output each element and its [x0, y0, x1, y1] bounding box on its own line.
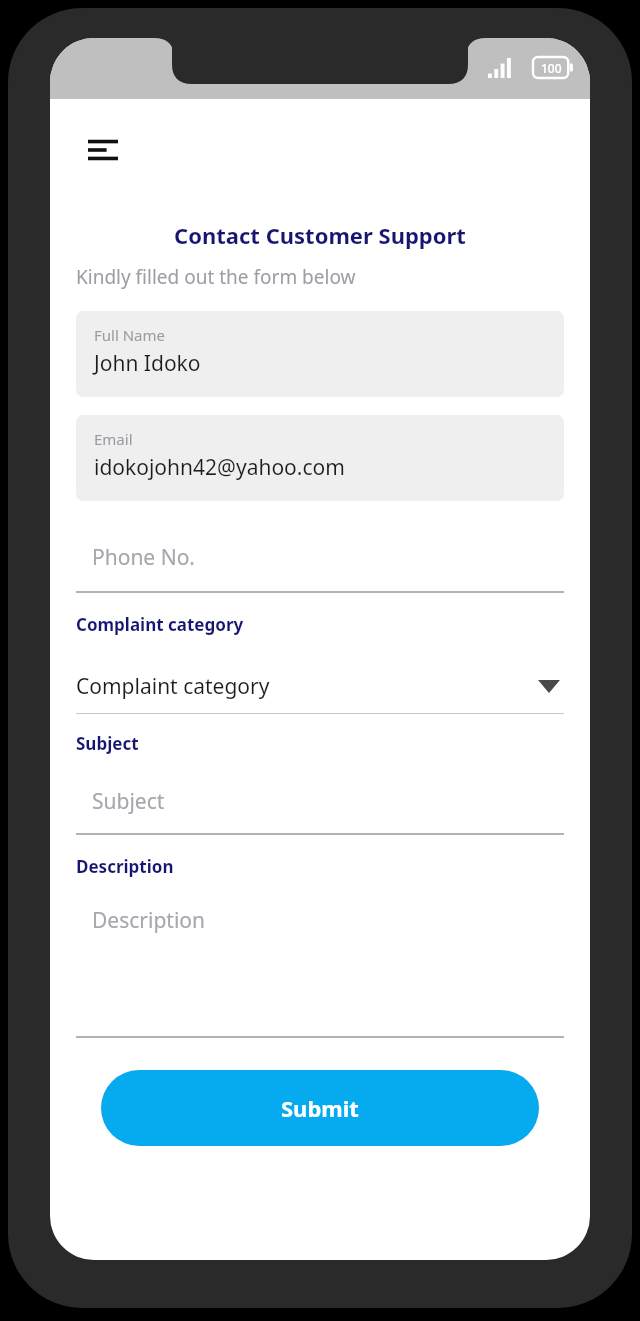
- staticText: Full Name: [94, 325, 165, 345]
- button[interactable]: Complaint category: [76, 658, 564, 714]
- staticText: Subject: [76, 732, 139, 755]
- staticText: Subject: [92, 787, 165, 816]
- staticText: idokojohn42@yahoo.com: [94, 453, 345, 482]
- staticText: John Idoko: [94, 349, 201, 378]
- button[interactable]: Phone No.: [76, 521, 564, 593]
- staticText: Phone No.: [92, 543, 195, 572]
- staticText: Kindly filled out the form below: [76, 264, 356, 290]
- staticText: Description: [76, 855, 174, 878]
- staticText: Complaint category: [76, 613, 244, 636]
- staticText: Description: [92, 906, 206, 935]
- staticText: Submit: [281, 1093, 359, 1123]
- staticText: Email: [94, 429, 133, 449]
- button[interactable]: Subject: [76, 767, 564, 835]
- button[interactable]: Menu: [72, 119, 134, 181]
- button[interactable]: Submit: [101, 1070, 539, 1146]
- button[interactable]: Description: [76, 888, 564, 1038]
- button[interactable]: Full Name: [76, 311, 564, 397]
- staticText: Contact Customer Support: [50, 220, 590, 250]
- button[interactable]: Email: [76, 415, 564, 501]
- staticText: 100: [541, 60, 562, 76]
- staticText: Complaint category: [76, 672, 270, 701]
